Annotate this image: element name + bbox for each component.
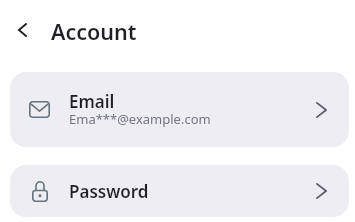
button[interactable]: Email <box>10 72 349 147</box>
button[interactable]: Back <box>6 14 38 46</box>
staticText: Password <box>69 180 149 203</box>
staticText: Account <box>51 17 137 46</box>
staticText: Email <box>69 90 115 113</box>
staticText: Ema***@example.com <box>69 110 211 128</box>
button[interactable]: Password <box>10 165 349 217</box>
